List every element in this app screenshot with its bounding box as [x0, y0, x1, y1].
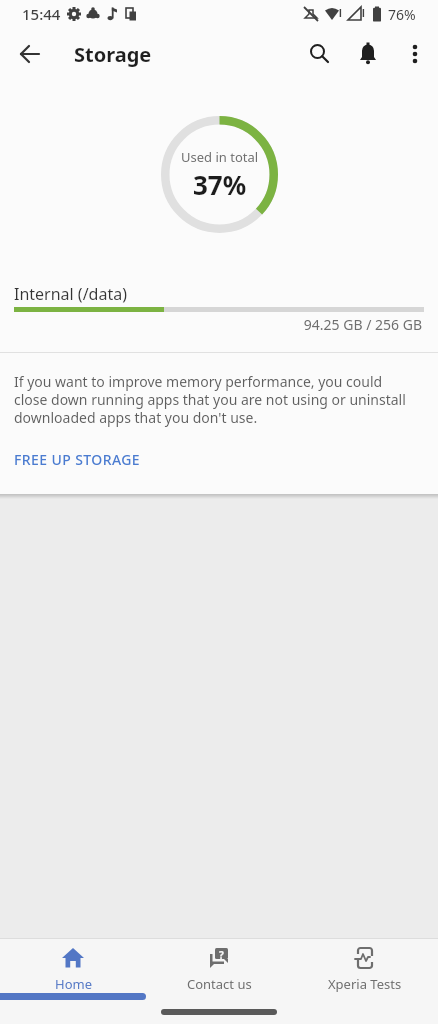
- staticText: Internal (/data): [14, 283, 127, 305]
- staticText: 15:44: [22, 4, 61, 24]
- staticText: 94.25 GB / 256 GB: [0, 315, 422, 334]
- staticText: Home: [55, 975, 92, 993]
- button[interactable]: Home: [0, 939, 146, 1000]
- button[interactable]: ?: [146, 939, 292, 1000]
- button[interactable]: FREE UP STORAGE: [14, 450, 140, 469]
- button[interactable]: Xperia Tests: [292, 939, 438, 1000]
- staticText: Contact us: [187, 975, 252, 993]
- staticText: Storage: [74, 41, 152, 68]
- staticText: If you want to improve memory performanc…: [14, 372, 406, 427]
- button[interactable]: [296, 30, 344, 78]
- staticText: ?: [219, 948, 224, 962]
- staticText: 37%: [193, 167, 247, 202]
- staticText: FREE UP STORAGE: [14, 450, 140, 469]
- staticText: Used in total: [181, 148, 259, 166]
- button[interactable]: [392, 31, 438, 77]
- button[interactable]: [4, 28, 56, 80]
- staticText: Xperia Tests: [328, 975, 402, 993]
- button[interactable]: [344, 30, 392, 78]
- staticText: 76%: [388, 5, 416, 24]
